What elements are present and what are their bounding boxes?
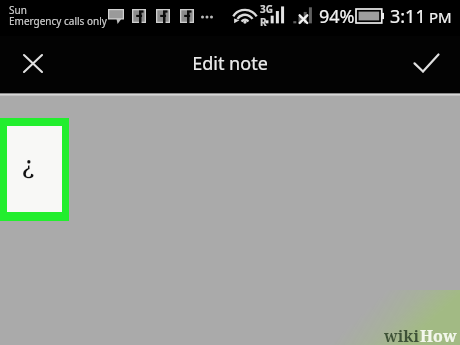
staticText: How [420, 325, 457, 345]
button[interactable]: Save [402, 39, 450, 87]
staticText: Edit note [192, 51, 268, 76]
staticText: Sun [9, 3, 27, 17]
staticText: 3G [260, 2, 273, 16]
staticText: ¿ [22, 147, 35, 181]
staticText: Emergency calls only [9, 14, 107, 28]
staticText: PM [429, 7, 452, 27]
staticText: 94% [319, 4, 355, 29]
button[interactable]: Close [9, 39, 57, 87]
button[interactable]: ¿ [0, 118, 69, 221]
staticText: 3:11 [390, 4, 426, 29]
staticText: R [260, 15, 267, 29]
staticText: wiki [384, 325, 420, 345]
